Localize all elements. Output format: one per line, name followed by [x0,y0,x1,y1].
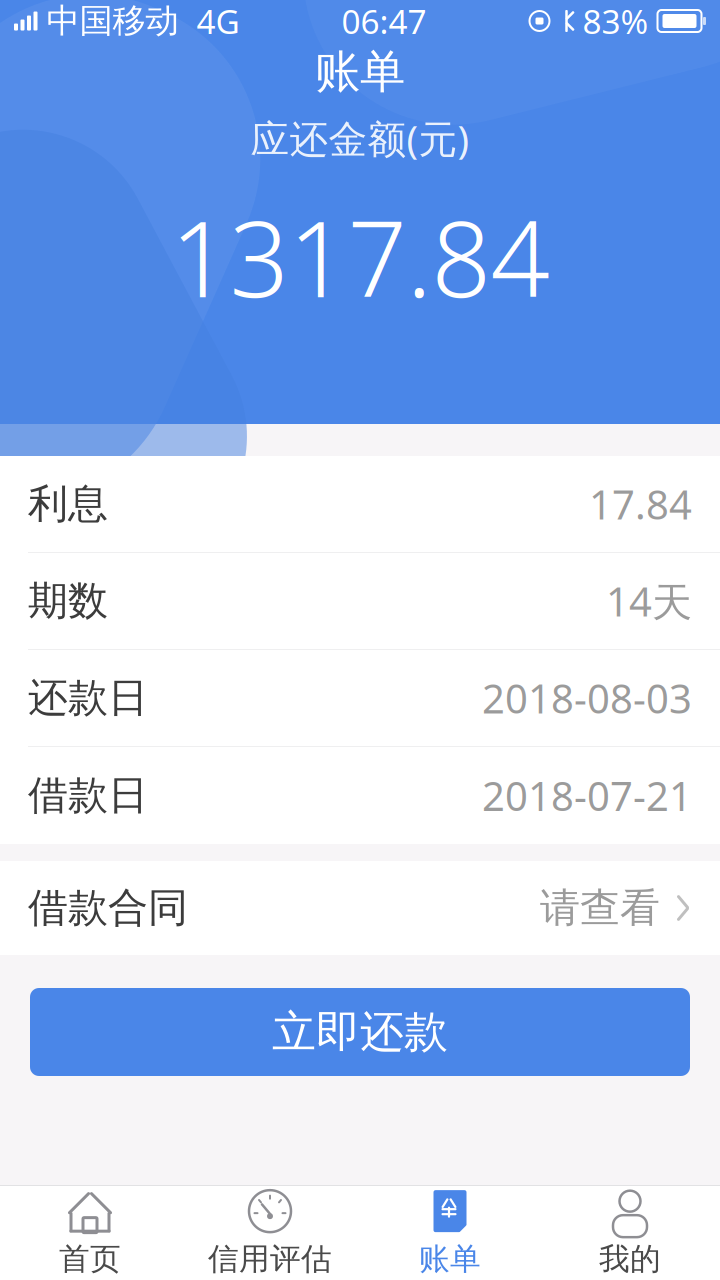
staticText: 06:47 [341,0,426,43]
button[interactable]: 借款合同 [0,861,720,955]
staticText: 立即还款 [272,1005,448,1059]
staticText: 83% [582,0,648,43]
staticText: 2018-07-21 [482,769,692,822]
staticText: 17.84 [589,477,692,530]
staticText: 2018-08-03 [482,671,692,724]
staticText: 借款日 [28,771,148,820]
staticText: 账单 [315,44,405,100]
staticText: 信用评估 [208,1240,332,1278]
staticText: 账单 [419,1240,481,1278]
staticText: 首页 [59,1240,121,1278]
staticText: 期数 [28,576,108,625]
button[interactable]: 首页 [0,1186,180,1280]
staticText: 请查看 [540,883,660,932]
staticText: 我的 [599,1240,661,1278]
button[interactable]: 立即还款 [30,988,690,1076]
staticText: 14天 [606,574,692,627]
button[interactable]: 账单 [360,1186,540,1280]
staticText: 借款合同 [28,883,188,932]
staticText: 利息 [28,479,108,528]
staticText: 中国移动 [46,0,178,41]
staticText: 应还金额(元) [250,112,469,164]
staticText: 1317.84 [170,188,549,326]
button[interactable]: 我的 [540,1186,720,1280]
staticText: 4G [196,0,239,43]
button[interactable]: 信用评估 [180,1186,360,1280]
staticText: 还款日 [28,673,148,722]
